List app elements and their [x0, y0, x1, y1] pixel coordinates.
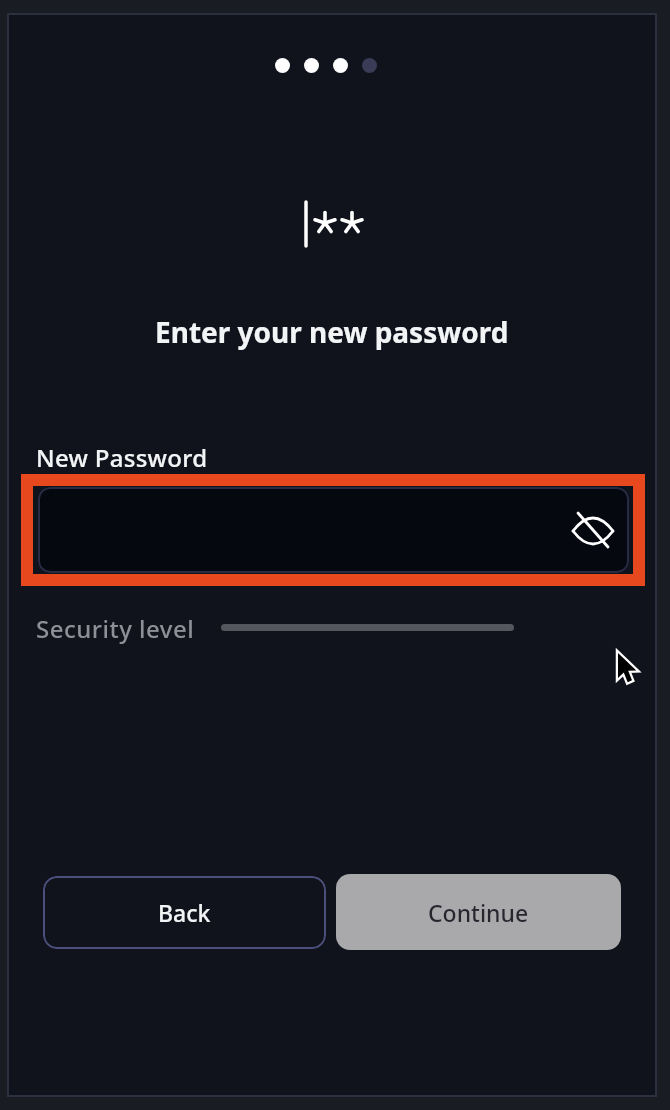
staticText: Back [158, 897, 211, 928]
staticText: New Password [36, 441, 208, 474]
staticText: Security level [36, 612, 195, 645]
staticText: Enter your new password [155, 313, 509, 351]
button[interactable]: Continue [336, 874, 621, 950]
button[interactable]: Back [43, 876, 326, 949]
button[interactable] [569, 506, 617, 554]
button[interactable] [38, 487, 629, 573]
staticText: Continue [428, 897, 529, 928]
